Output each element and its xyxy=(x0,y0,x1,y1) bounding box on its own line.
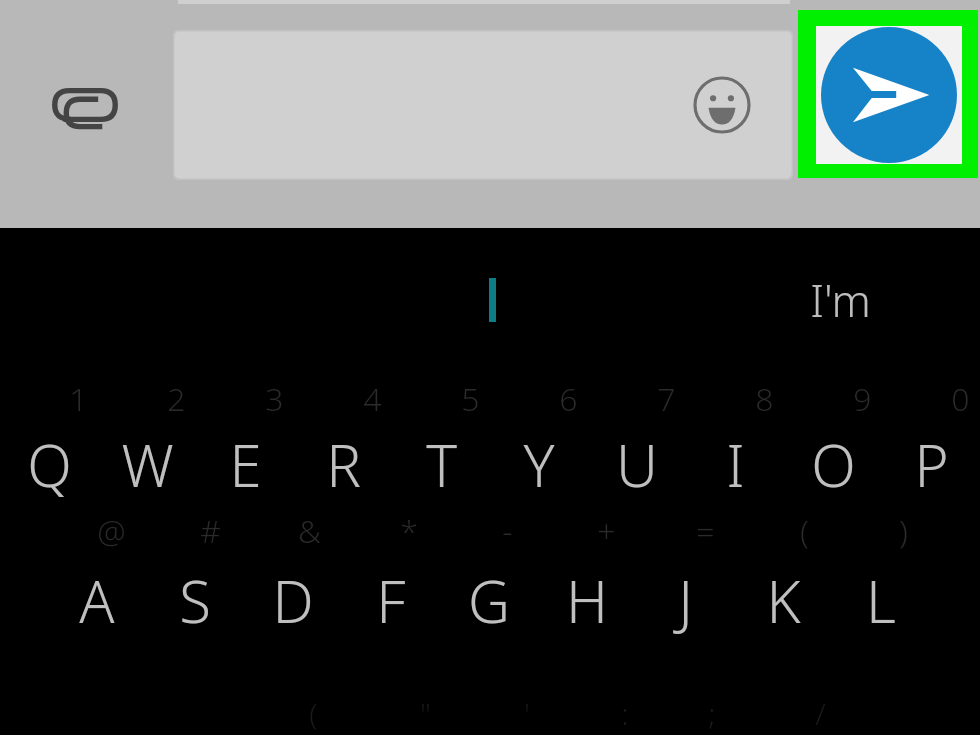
button[interactable]: 6 xyxy=(519,375,617,423)
staticText: = xyxy=(696,509,715,553)
staticText: 6 xyxy=(559,377,578,421)
staticText: 7 xyxy=(657,377,676,421)
button[interactable]: D xyxy=(244,557,342,643)
staticText: R xyxy=(326,425,361,504)
staticText: D xyxy=(272,561,314,640)
staticText: * xyxy=(400,509,418,553)
button[interactable]: ) xyxy=(854,505,953,557)
staticText: 9 xyxy=(853,377,872,421)
button[interactable]: Send xyxy=(816,26,962,164)
staticText: @ xyxy=(97,509,126,553)
staticText: P xyxy=(914,425,949,504)
staticText: ( xyxy=(309,693,318,734)
button[interactable]: 3 xyxy=(225,375,323,423)
staticText: 1 xyxy=(69,377,88,421)
staticText: H xyxy=(566,561,608,640)
button[interactable]: E xyxy=(196,423,294,505)
staticText: T xyxy=(426,425,457,504)
button[interactable]: I xyxy=(686,423,784,505)
button[interactable]: 8 xyxy=(715,375,813,423)
staticText: S xyxy=(179,561,211,640)
button[interactable]: J xyxy=(636,557,734,643)
button[interactable]: # xyxy=(161,505,260,557)
button[interactable]: Attach file xyxy=(37,57,133,153)
button[interactable]: 0 xyxy=(911,375,980,423)
staticText: + xyxy=(597,509,616,553)
staticText: O xyxy=(811,425,856,504)
button[interactable]: & xyxy=(260,505,359,557)
button[interactable]: 1 xyxy=(29,375,127,423)
button[interactable]: Insert emoji xyxy=(686,69,758,141)
staticText: 2 xyxy=(167,377,186,421)
button[interactable]: ( xyxy=(755,505,854,557)
button[interactable]: T xyxy=(392,423,490,505)
staticText: Q xyxy=(27,425,72,504)
staticText: - xyxy=(502,509,513,553)
staticText: E xyxy=(229,425,262,504)
staticText: A xyxy=(79,561,115,640)
button[interactable]: S xyxy=(146,557,244,643)
staticText: 4 xyxy=(363,377,382,421)
staticText: ; xyxy=(708,693,716,734)
staticText: 8 xyxy=(755,377,774,421)
staticText: G xyxy=(468,561,510,640)
button[interactable]: W xyxy=(98,423,196,505)
staticText: 3 xyxy=(265,377,284,421)
button[interactable]: L xyxy=(832,557,930,643)
staticText: K xyxy=(766,561,801,640)
button[interactable]: H xyxy=(538,557,636,643)
staticText: : xyxy=(621,693,629,734)
staticText: I'm xyxy=(810,270,871,330)
button[interactable]: Insert emoji xyxy=(173,30,793,180)
button[interactable]: 4 xyxy=(323,375,421,423)
staticText: ( xyxy=(800,509,809,553)
button[interactable]: Y xyxy=(490,423,588,505)
button[interactable]: + xyxy=(557,505,656,557)
button[interactable]: O xyxy=(784,423,882,505)
button[interactable]: A xyxy=(48,557,146,643)
button[interactable]: * xyxy=(359,505,458,557)
staticText: & xyxy=(298,509,321,553)
button[interactable]: Suggestion I xyxy=(424,250,564,350)
staticText: L xyxy=(866,561,896,640)
staticText: 0 xyxy=(951,377,970,421)
button[interactable]: 9 xyxy=(813,375,911,423)
button[interactable]: U xyxy=(588,423,686,505)
button[interactable]: F xyxy=(342,557,440,643)
button[interactable]: 7 xyxy=(617,375,715,423)
staticText: 5 xyxy=(461,377,480,421)
staticText: ) xyxy=(899,509,908,553)
staticText: / xyxy=(815,693,826,734)
button[interactable]: = xyxy=(656,505,755,557)
staticText: ' xyxy=(524,693,530,734)
button[interactable]: R xyxy=(294,423,392,505)
staticText: I xyxy=(726,425,745,504)
button[interactable]: 5 xyxy=(421,375,519,423)
button[interactable]: @ xyxy=(62,505,161,557)
button[interactable]: G xyxy=(440,557,538,643)
staticText: J xyxy=(678,561,693,640)
staticText: W xyxy=(121,425,174,504)
staticText: U xyxy=(616,425,658,504)
button[interactable]: Q xyxy=(0,423,98,505)
button[interactable]: K xyxy=(734,557,832,643)
staticText: " xyxy=(420,693,431,734)
button[interactable]: 2 xyxy=(127,375,225,423)
staticText: F xyxy=(376,561,406,640)
button[interactable]: I'm xyxy=(760,250,920,350)
staticText: # xyxy=(200,509,221,553)
staticText: Y xyxy=(523,425,555,504)
button[interactable]: P xyxy=(882,423,980,505)
